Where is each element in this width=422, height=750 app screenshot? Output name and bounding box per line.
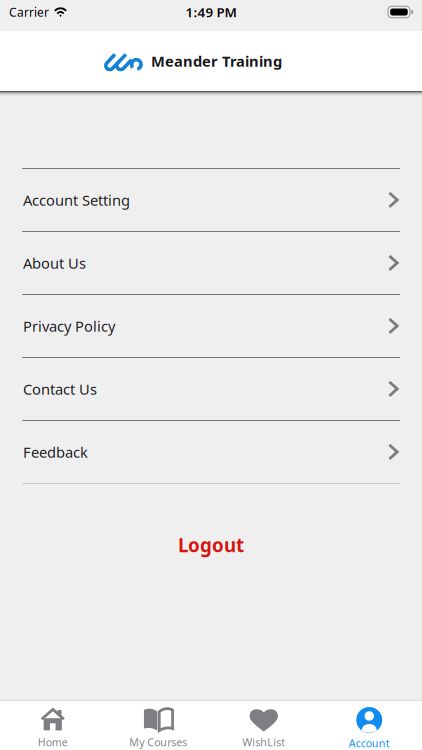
button[interactable]: Contact Us — [0, 358, 422, 420]
staticText: Privacy Policy — [23, 316, 115, 336]
staticText: Account Setting — [23, 190, 130, 210]
staticText: My Courses — [129, 735, 187, 749]
staticText: Feedback — [23, 442, 88, 462]
staticText: About Us — [23, 253, 86, 273]
staticText: Contact Us — [23, 379, 97, 399]
button[interactable]: Account — [316, 701, 422, 750]
staticText: Home — [38, 735, 68, 749]
staticText: 1:49 PM — [185, 3, 236, 21]
staticText: Carrier — [9, 4, 49, 20]
button[interactable]: Account Setting — [0, 169, 422, 231]
button[interactable]: About Us — [0, 232, 422, 294]
button[interactable]: Logout — [0, 524, 422, 566]
staticText: Account — [349, 736, 390, 750]
button[interactable]: My Courses — [105, 701, 211, 750]
button[interactable]: Privacy Policy — [0, 295, 422, 357]
button[interactable]: Home — [0, 701, 105, 750]
staticText: Logout — [178, 532, 244, 558]
staticText: Meander Training — [151, 51, 282, 71]
button[interactable]: WishList — [211, 701, 316, 750]
button[interactable]: Feedback — [0, 421, 422, 483]
staticText: WishList — [242, 735, 285, 749]
